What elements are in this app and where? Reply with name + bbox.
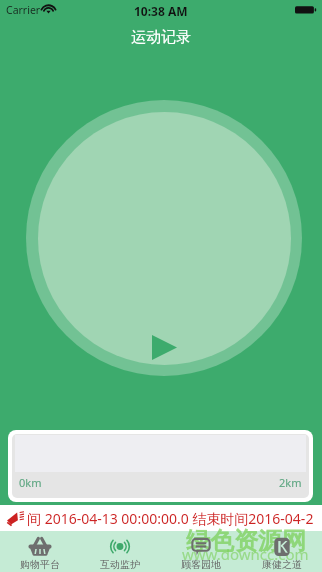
staticText: 2km [279, 475, 302, 490]
staticText: 0km [19, 475, 42, 490]
button[interactable]: 购物平台 [0, 531, 80, 572]
staticText: www.downcc.com [182, 544, 309, 564]
staticText: 运动记录 [131, 28, 191, 47]
staticText: 间 2016-04-13 00:00:00.0 结束时间2016-04-2 [27, 509, 314, 528]
staticText: 购物平台 [20, 558, 60, 571]
staticText: Carrier [6, 3, 41, 17]
staticText: 绿色资源网 [186, 526, 306, 556]
staticText: 10:38 AM [134, 3, 188, 19]
button[interactable]: 互动监护 [80, 531, 160, 572]
staticText: 互动监护 [100, 558, 140, 571]
button[interactable]: 顾客园地 [160, 531, 241, 572]
button[interactable]: 康健之道 [241, 531, 322, 572]
staticText: 康健之道 [262, 558, 302, 571]
button[interactable]: Start running [26, 100, 302, 376]
staticText: 顾客园地 [181, 558, 221, 571]
